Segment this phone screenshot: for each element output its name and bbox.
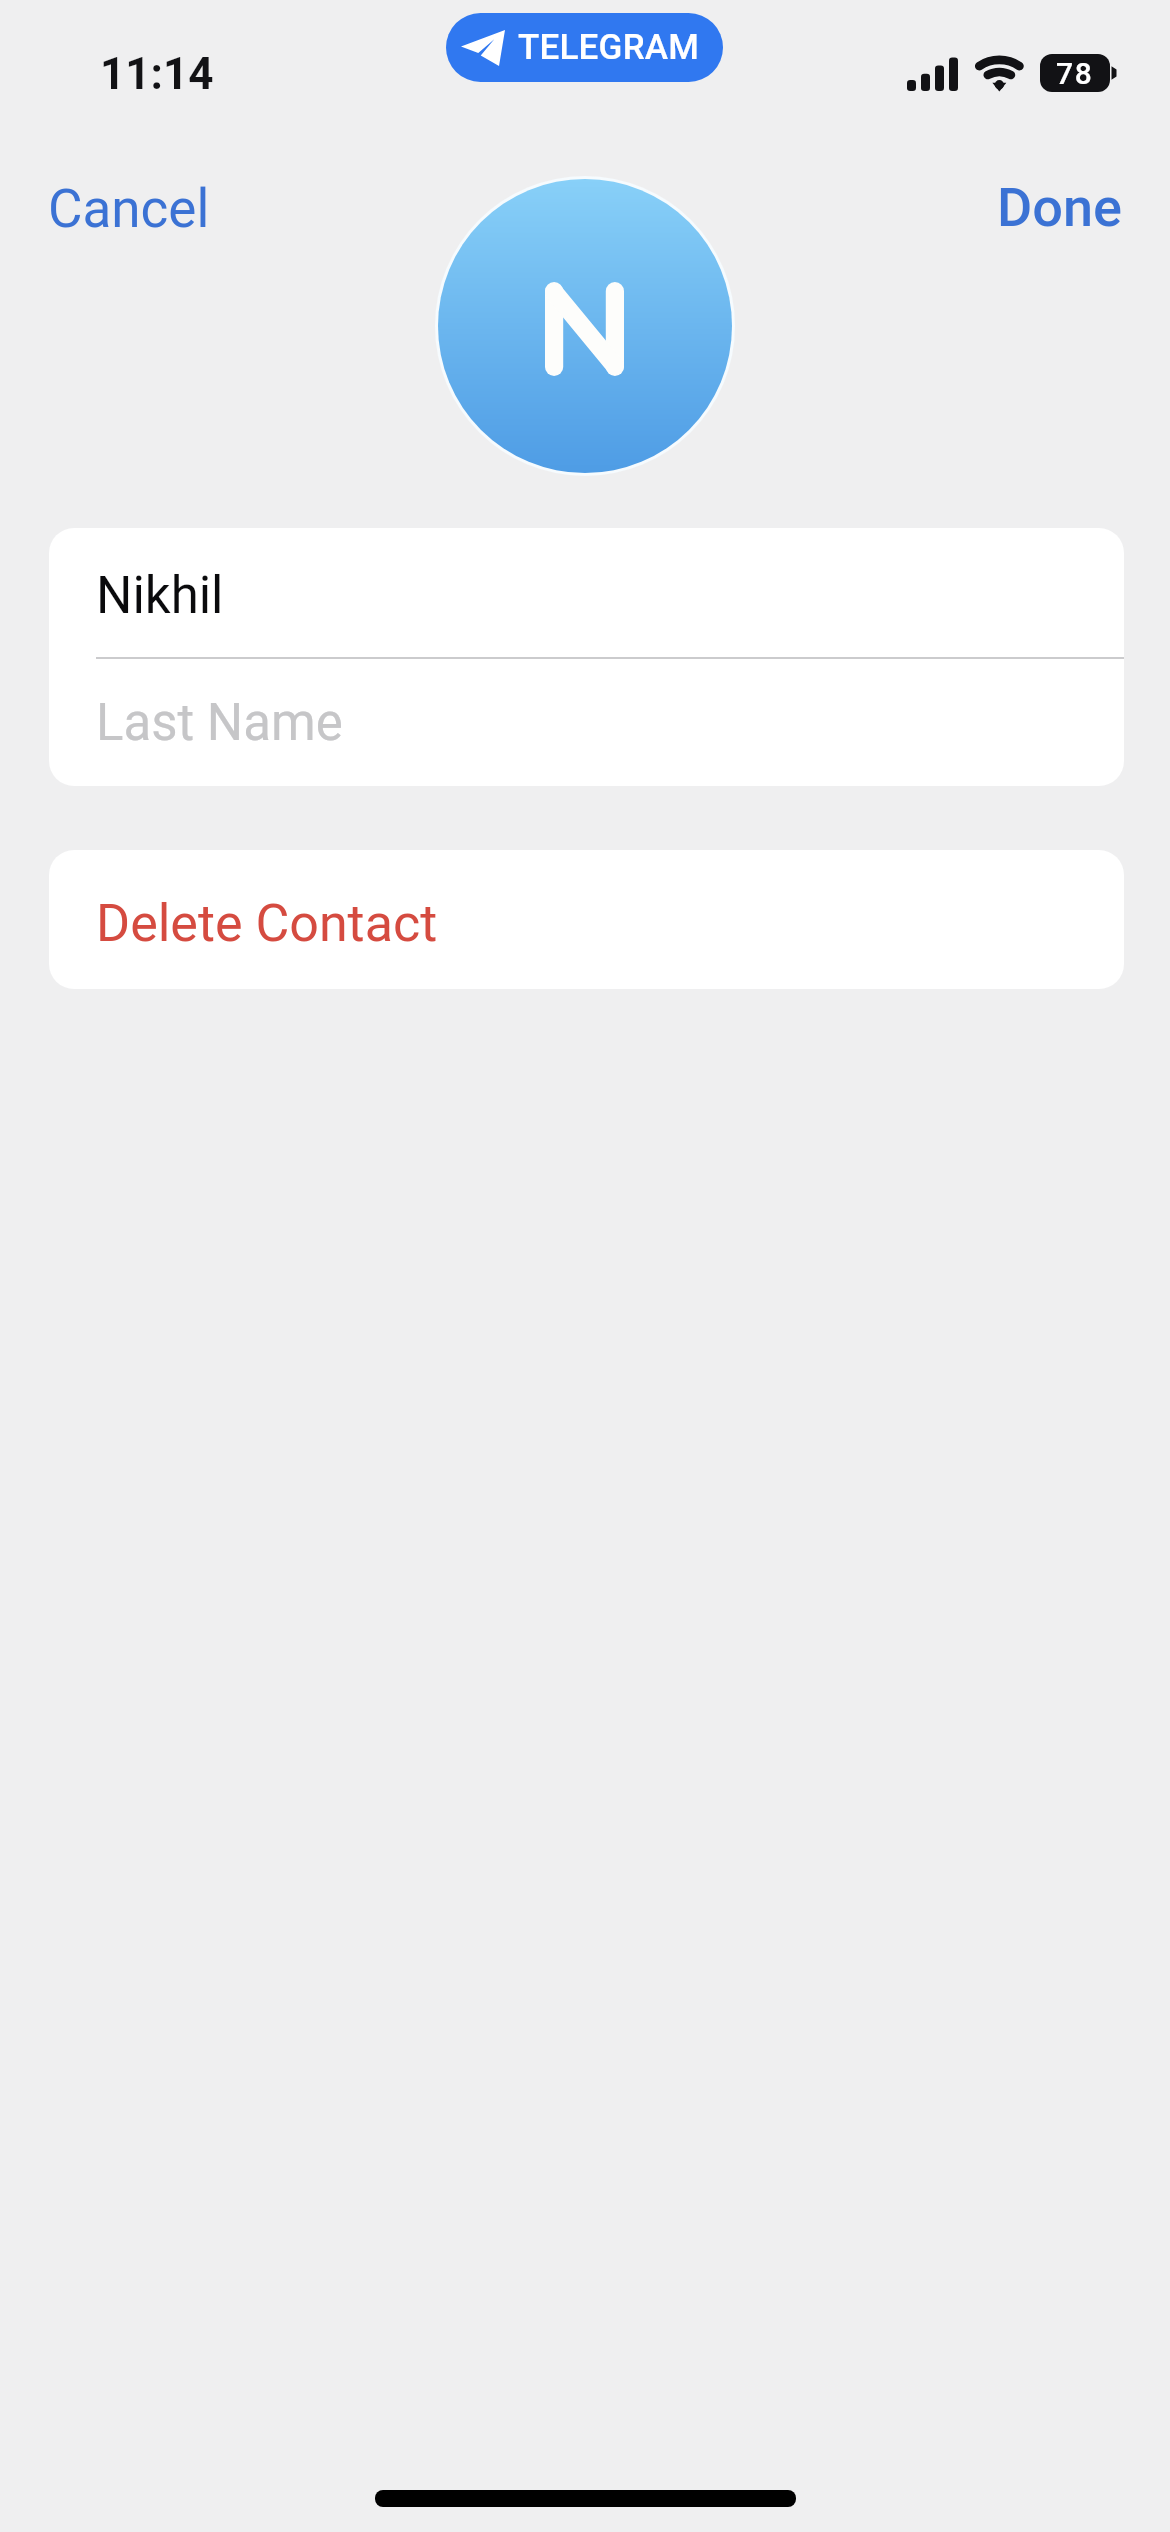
button[interactable]: TELEGRAM (446, 13, 723, 82)
staticText: Done (997, 176, 1123, 239)
staticText: 11:14 (100, 48, 214, 100)
staticText: 78 (1056, 56, 1094, 91)
staticText: Delete Contact (96, 893, 438, 954)
button[interactable]: Cancel (20, 156, 238, 262)
staticText: TELEGRAM (518, 27, 700, 68)
staticText: Nikhil (96, 566, 224, 626)
button[interactable]: Last Name (49, 659, 1124, 786)
staticText: Last Name (96, 693, 343, 753)
button[interactable]: Done (969, 154, 1151, 261)
button[interactable]: Change profile photo (438, 179, 732, 473)
button[interactable]: Nikhil (49, 528, 1124, 657)
button[interactable]: Delete Contact (49, 850, 1124, 989)
staticText: Cancel (48, 178, 210, 240)
